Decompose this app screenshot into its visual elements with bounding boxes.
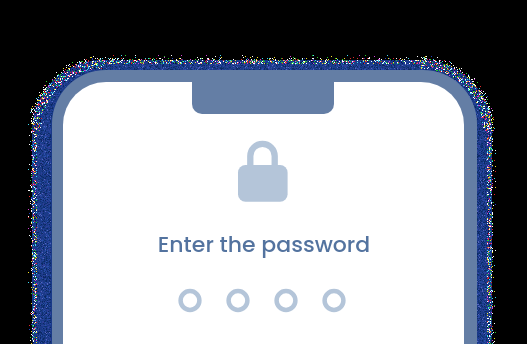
other: Locked	[236, 136, 290, 204]
button[interactable]: Password field	[170, 284, 360, 318]
staticText: Enter the password	[63, 229, 465, 260]
